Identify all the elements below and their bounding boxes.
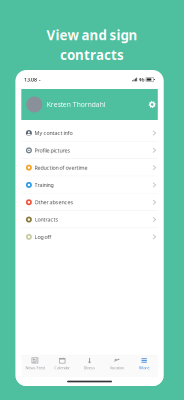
- staticText: More: [139, 365, 149, 370]
- button[interactable]: Settings: [148, 100, 156, 108]
- button[interactable]: Training: [21, 176, 158, 194]
- button[interactable]: Reduction of overtime: [21, 159, 158, 176]
- staticText: Other absences: [34, 199, 73, 206]
- staticText: Vacation: [110, 365, 124, 370]
- staticText: Illness: [84, 365, 95, 370]
- button[interactable]: My contact info: [21, 124, 158, 142]
- staticText: 13.08: [24, 76, 37, 83]
- staticText: Profile pictures: [34, 147, 70, 154]
- button[interactable]: Other absences: [21, 194, 158, 211]
- staticText: contracts: [60, 46, 124, 64]
- staticText: Log off: [34, 233, 51, 240]
- staticText: Contracts: [34, 216, 58, 223]
- staticText: My contact info: [34, 129, 72, 137]
- button[interactable]: Contracts: [21, 211, 158, 228]
- staticText: Training: [34, 181, 53, 188]
- button[interactable]: Profile pictures: [21, 142, 158, 159]
- button[interactable]: Illness: [76, 355, 103, 372]
- staticText: Reduction of overtime: [34, 164, 87, 171]
- button[interactable]: More: [130, 355, 158, 372]
- staticText: News Feed: [25, 365, 44, 370]
- staticText: 46: [139, 76, 145, 83]
- button[interactable]: Vacation: [103, 355, 130, 372]
- staticText: Kresten Thorndahl: [47, 100, 106, 109]
- staticText: ⌄: [37, 77, 41, 82]
- button[interactable]: News Feed: [21, 355, 49, 372]
- staticText: Calendar: [54, 365, 70, 370]
- staticText: View and sign: [46, 26, 137, 44]
- button[interactable]: Log off: [21, 228, 158, 245]
- button[interactable]: Calendar: [49, 355, 76, 372]
